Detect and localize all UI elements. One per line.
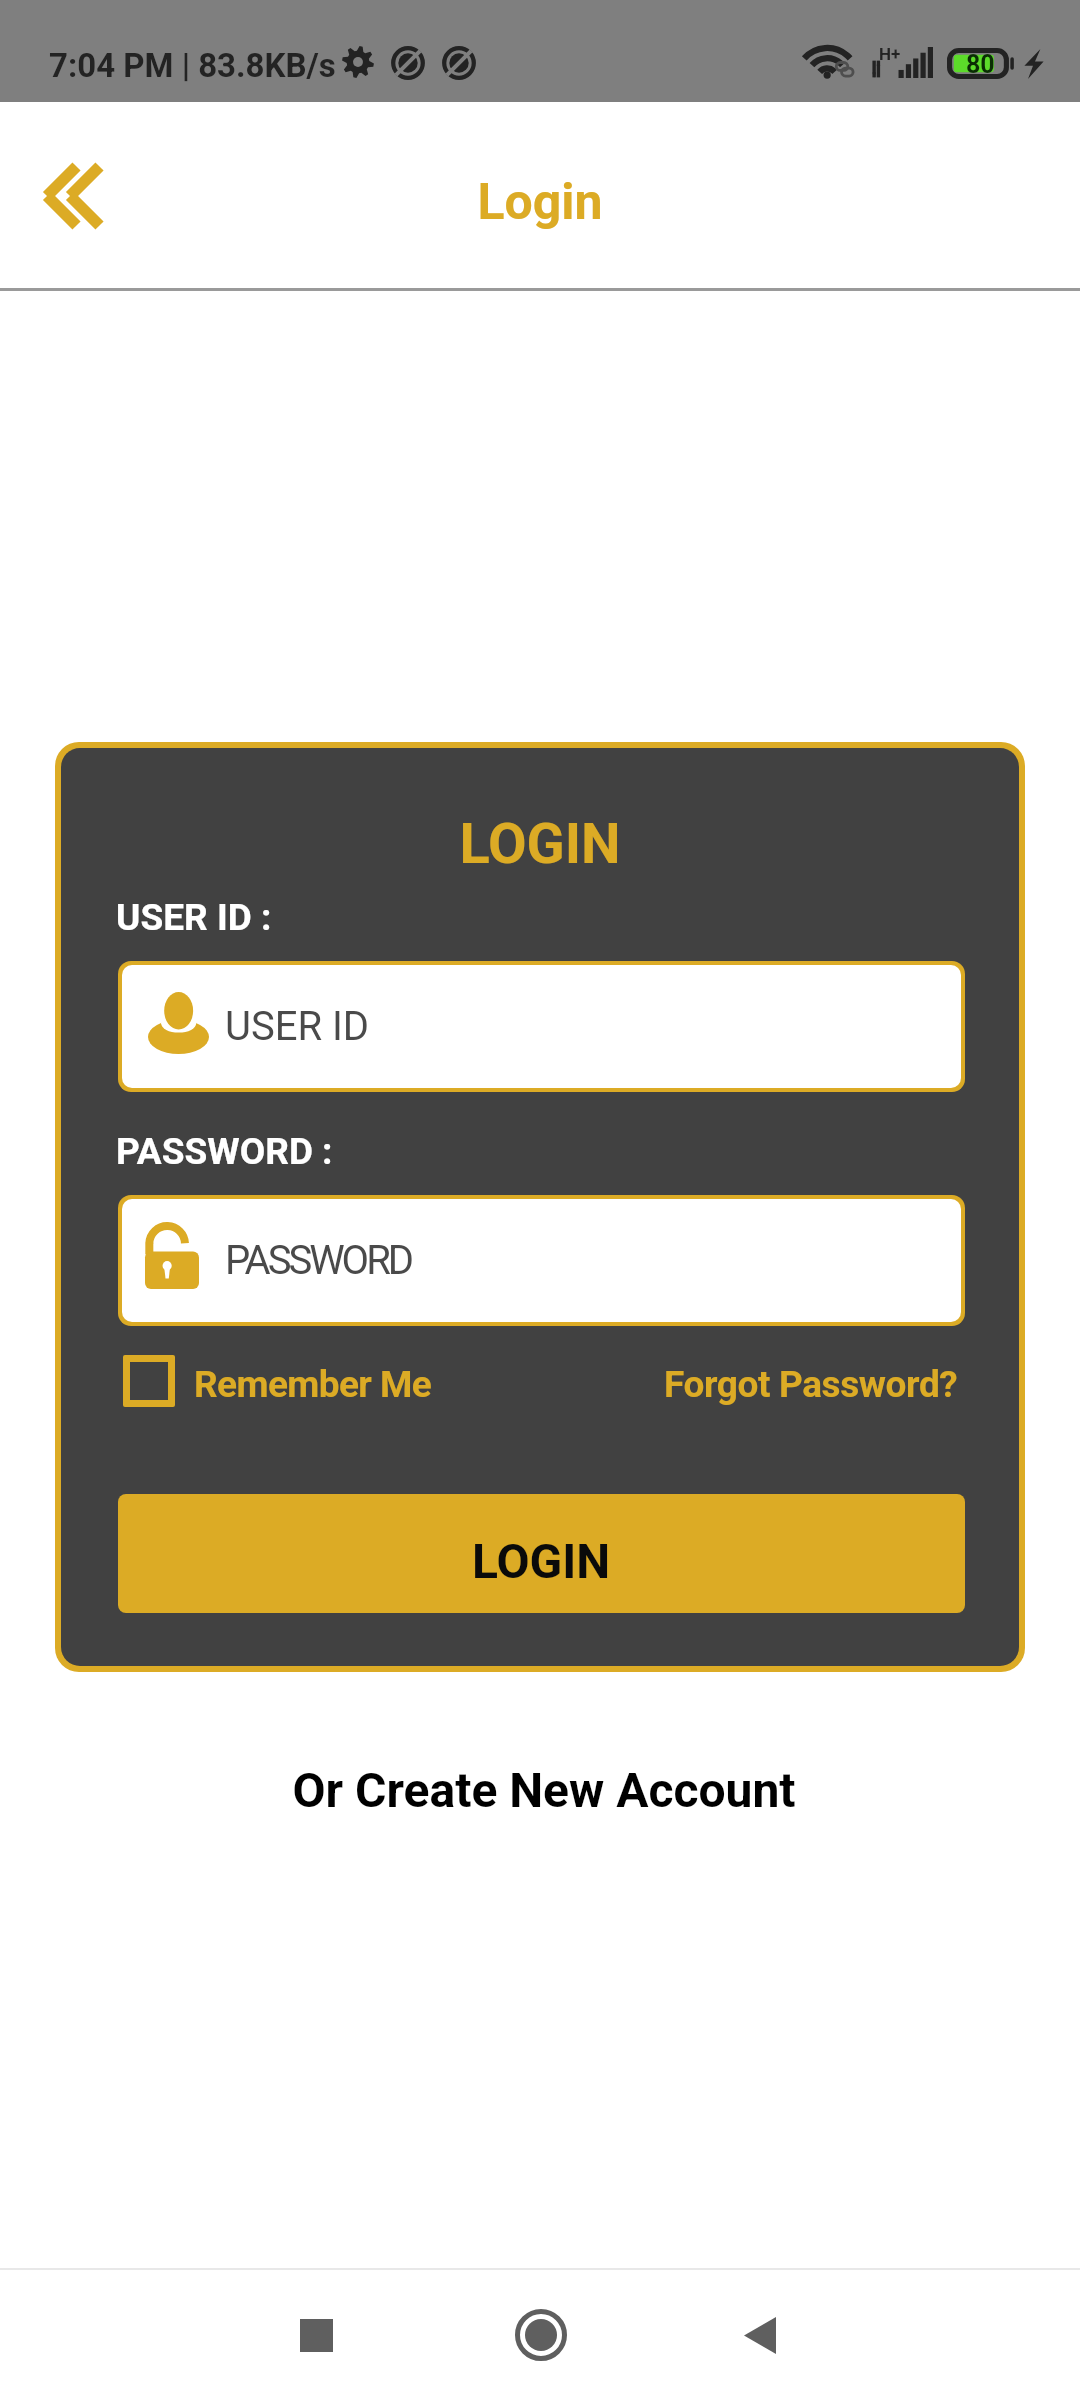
- button[interactable]: Back: [14, 140, 126, 252]
- staticText: Remember Me: [194, 1363, 432, 1406]
- staticText: PASSWORD: [225, 1237, 412, 1284]
- staticText: LOGIN: [61, 811, 1019, 877]
- staticText: USER ID: [225, 1003, 370, 1050]
- button[interactable]: Remember Me: [123, 1348, 432, 1420]
- staticText: H+: [879, 44, 901, 64]
- staticText: USER ID :: [116, 896, 272, 939]
- button[interactable]: Home: [486, 2280, 596, 2390]
- staticText: 80: [966, 50, 995, 79]
- button[interactable]: PASSWORD: [122, 1199, 961, 1322]
- button[interactable]: Recent apps: [261, 2280, 371, 2390]
- button[interactable]: Or Create New Account: [4, 1762, 1080, 1818]
- staticText: Login: [0, 173, 1080, 232]
- staticText: Forgot Password?: [664, 1363, 958, 1406]
- button[interactable]: USER ID: [122, 965, 961, 1088]
- button[interactable]: Back: [705, 2280, 815, 2390]
- staticText: PASSWORD :: [116, 1130, 333, 1173]
- staticText: 7:04 PM | 83.8KB/s: [49, 46, 336, 85]
- button[interactable]: Forgot Password?: [664, 1348, 958, 1420]
- staticText: LOGIN: [472, 1533, 611, 1589]
- button[interactable]: LOGIN: [118, 1494, 965, 1613]
